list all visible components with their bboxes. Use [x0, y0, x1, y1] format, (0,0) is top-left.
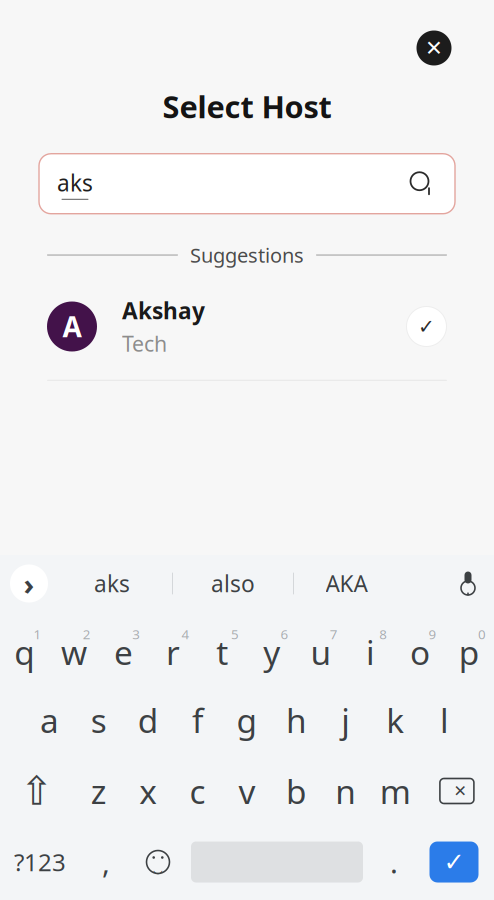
staticText: r [166, 630, 180, 674]
button[interactable]: Close [412, 26, 456, 70]
button[interactable]: b [272, 755, 321, 826]
button[interactable]: ?123 [0, 826, 80, 897]
button[interactable]: v [222, 755, 272, 826]
button[interactable]: Shift [0, 755, 74, 826]
staticText: 4 [182, 625, 190, 643]
staticText: m [380, 769, 411, 813]
staticText: Akshay [122, 295, 205, 325]
button[interactable]: p [445, 613, 494, 684]
staticText: ?123 [14, 846, 66, 878]
button[interactable]: Enter [422, 826, 486, 897]
staticText: o [410, 630, 430, 674]
button[interactable]: Search [405, 167, 439, 201]
staticText: l [440, 698, 449, 742]
button[interactable]: y [247, 613, 296, 684]
staticText: AKA [325, 568, 367, 598]
staticText: v [238, 769, 255, 813]
staticText: a [40, 698, 59, 742]
button[interactable]: l [420, 684, 469, 755]
button[interactable]: , [80, 826, 132, 897]
button[interactable]: k [370, 684, 420, 755]
button[interactable]: e [99, 613, 148, 684]
staticText: 8 [379, 625, 387, 643]
button[interactable]: c [173, 755, 222, 826]
button[interactable]: o [395, 613, 445, 684]
button[interactable]: m [370, 755, 420, 826]
staticText: b [286, 769, 307, 813]
button[interactable]: n [321, 755, 370, 826]
button[interactable]: g [222, 684, 272, 755]
staticText: Suggestions [190, 242, 304, 268]
button[interactable]: h [272, 684, 321, 755]
staticText: k [386, 698, 404, 742]
button[interactable]: . [370, 826, 418, 897]
button[interactable]: u [296, 613, 346, 684]
staticText: u [311, 630, 332, 674]
button[interactable]: Space [184, 826, 370, 897]
staticText: 9 [429, 625, 437, 643]
button[interactable]: A [47, 295, 447, 358]
staticText: 6 [280, 625, 288, 643]
button[interactable]: j [321, 684, 370, 755]
staticText: w [61, 630, 87, 674]
staticText: also [211, 568, 255, 598]
staticText: c [190, 769, 206, 813]
staticText: q [14, 630, 35, 674]
staticText: 7 [330, 625, 338, 643]
button[interactable]: Emoji [132, 826, 184, 897]
button[interactable]: AKA [294, 560, 399, 606]
staticText: x [139, 769, 157, 813]
staticText: y [263, 630, 280, 674]
button[interactable]: z [74, 755, 123, 826]
staticText: n [335, 769, 356, 813]
button[interactable]: d [123, 684, 173, 755]
staticText: 2 [83, 625, 91, 643]
button[interactable]: i [346, 613, 395, 684]
staticText: aks [57, 168, 93, 198]
button[interactable]: also [173, 560, 293, 606]
staticText: t [216, 630, 228, 674]
staticText: j [341, 698, 350, 742]
staticText: z [91, 769, 107, 813]
staticText: ✓ [418, 315, 435, 338]
staticText: ✓ [443, 848, 464, 876]
staticText: ✕ [425, 36, 443, 60]
button[interactable]: t [198, 613, 247, 684]
staticText: g [236, 698, 257, 742]
staticText: f [192, 698, 203, 742]
staticText: . [390, 842, 398, 881]
staticText: 3 [132, 625, 140, 643]
staticText: i [366, 630, 375, 674]
button[interactable]: x [123, 755, 173, 826]
staticText: ⇧ [20, 768, 54, 814]
staticText: Tech [122, 329, 167, 358]
staticText: › [23, 564, 34, 603]
staticText: 0 [478, 625, 486, 643]
button[interactable]: Backspace [420, 755, 494, 826]
button[interactable]: aks [52, 560, 172, 606]
staticText: ✕ [453, 782, 466, 800]
staticText: p [459, 630, 480, 674]
staticText: aks [94, 568, 130, 598]
staticText: 1 [33, 625, 41, 643]
staticText: A [62, 308, 81, 345]
staticText: Select Host [162, 86, 331, 127]
button[interactable]: s [74, 684, 123, 755]
button[interactable]: a [25, 684, 74, 755]
staticText: d [138, 698, 159, 742]
button[interactable]: w [49, 613, 99, 684]
button[interactable]: q [0, 613, 49, 684]
button[interactable]: More suggestions [6, 560, 52, 606]
staticText: , [102, 842, 110, 881]
staticText: s [91, 698, 107, 742]
button[interactable]: f [173, 684, 222, 755]
staticText: e [114, 630, 133, 674]
staticText: h [286, 698, 307, 742]
button[interactable]: r [148, 613, 198, 684]
button[interactable]: Voice input [446, 560, 490, 606]
staticText: ‿ [153, 853, 163, 875]
staticText: 5 [231, 625, 239, 643]
